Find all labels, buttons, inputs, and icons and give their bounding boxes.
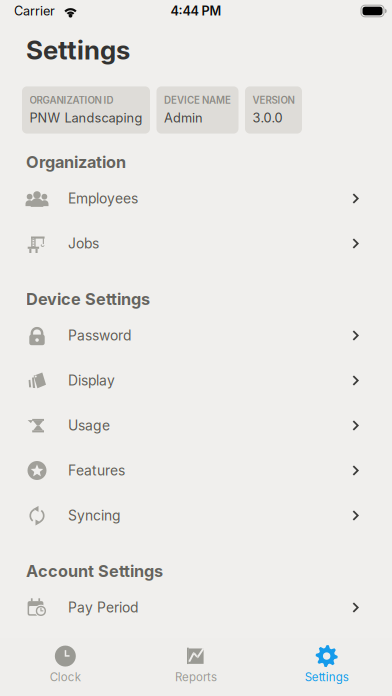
button[interactable]: Settings [261, 639, 392, 695]
staticText: VERSION [252, 94, 294, 106]
staticText: 3.0.0 [252, 110, 282, 126]
staticText: ORGANIZATION ID [29, 94, 113, 106]
button[interactable]: Pay Period [0, 585, 392, 630]
staticText: Carrier [14, 3, 55, 19]
staticText: Usage [68, 417, 110, 434]
staticText: Pay Period [68, 599, 138, 616]
staticText: Settings [305, 670, 349, 684]
button[interactable]: Usage [0, 403, 392, 448]
button[interactable]: Display [0, 358, 392, 403]
staticText: 4:44 PM [170, 3, 221, 19]
staticText: Employees [68, 190, 138, 207]
button[interactable]: Password [0, 313, 392, 358]
staticText: Display [68, 372, 115, 389]
staticText: Jobs [68, 235, 99, 252]
staticText: Account Settings [26, 561, 163, 581]
button[interactable]: Clock [0, 639, 131, 695]
staticText: Syncing [68, 507, 121, 524]
staticText: DEVICE NAME [164, 94, 231, 106]
button[interactable]: Reports [131, 639, 261, 695]
button[interactable]: Features [0, 448, 392, 493]
staticText: Clock [50, 670, 81, 684]
staticText: Device Settings [26, 289, 150, 309]
button[interactable]: Syncing [0, 493, 392, 538]
staticText: Organization [26, 152, 126, 172]
staticText: Admin [164, 110, 203, 126]
staticText: Features [68, 462, 125, 479]
staticText: Reports [175, 670, 217, 684]
staticText: Settings [26, 34, 130, 66]
staticText: PNW Landscaping [29, 110, 142, 126]
staticText: Password [68, 327, 131, 344]
button[interactable]: Jobs [0, 221, 392, 266]
button[interactable]: Employees [0, 176, 392, 221]
